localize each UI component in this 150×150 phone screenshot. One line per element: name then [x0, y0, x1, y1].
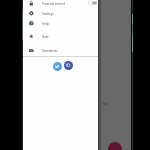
staticText: Rate — [42, 34, 49, 39]
button[interactable]: Help — [23, 18, 98, 28]
button[interactable] — [108, 142, 122, 150]
button[interactable]: Newsletter — [23, 45, 98, 55]
button[interactable]: Rate — [23, 31, 98, 41]
staticText: Help — [42, 21, 49, 26]
staticText: ts — [103, 101, 107, 107]
staticText: Parental control — [42, 1, 66, 6]
button[interactable]: Parental control — [23, 0, 98, 8]
staticText: Settings — [42, 11, 54, 16]
staticText: Newsletter — [42, 48, 58, 53]
button[interactable] — [53, 62, 62, 71]
button[interactable]: Settings — [23, 8, 98, 18]
button[interactable] — [86, 0, 98, 6]
button[interactable] — [64, 61, 73, 70]
